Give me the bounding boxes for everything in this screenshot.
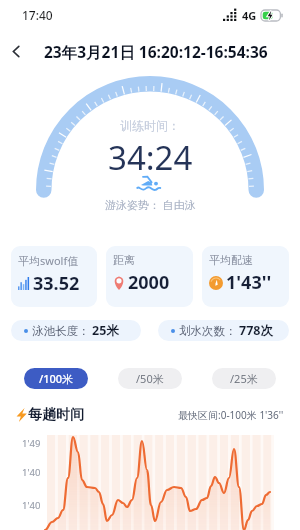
staticText: 33.52 [33,271,80,296]
staticText: 训练时间： [120,118,180,133]
button[interactable]: /25米 [212,368,276,389]
staticText: /25米 [230,371,258,386]
staticText: 最快区间:0-100米 1'36'' [178,408,284,422]
staticText: 2000 [128,270,170,295]
button[interactable]: Back [4,39,28,63]
staticText: 1'49 [22,437,41,450]
button[interactable]: /50米 [118,368,182,389]
button[interactable]: 平均配速 [202,246,289,307]
staticText: 距离 [113,253,135,267]
staticText: 17:40 [22,7,53,23]
staticText: 4G [242,8,257,23]
staticText: /100米 [39,371,74,386]
staticText: 34:24 [108,135,193,180]
staticText: 平均配速 [209,253,253,267]
button[interactable]: 平均swolf值 [11,246,97,307]
staticText: 平均swolf值 [18,253,79,268]
staticText: /50米 [136,371,164,386]
button[interactable]: /100米 [24,368,88,389]
button[interactable]: 泳池长度： [11,320,141,341]
staticText: 1'40 [22,499,41,512]
button[interactable]: 距离 [106,246,193,307]
staticText: 23年3月21日 16:20:12-16:54:36 [44,41,268,62]
staticText: 每趟时间 [28,406,84,424]
staticText: 游泳姿势： 自由泳 [105,197,196,212]
staticText: 778次 [239,322,273,339]
staticText: 划水次数： [179,324,237,338]
staticText: 泳池长度： [32,324,90,338]
staticText: 25米 [92,322,119,339]
staticText: 1'43'' [226,270,272,295]
staticText: 1'40 [22,466,41,479]
button[interactable]: 划水次数： [158,320,289,341]
